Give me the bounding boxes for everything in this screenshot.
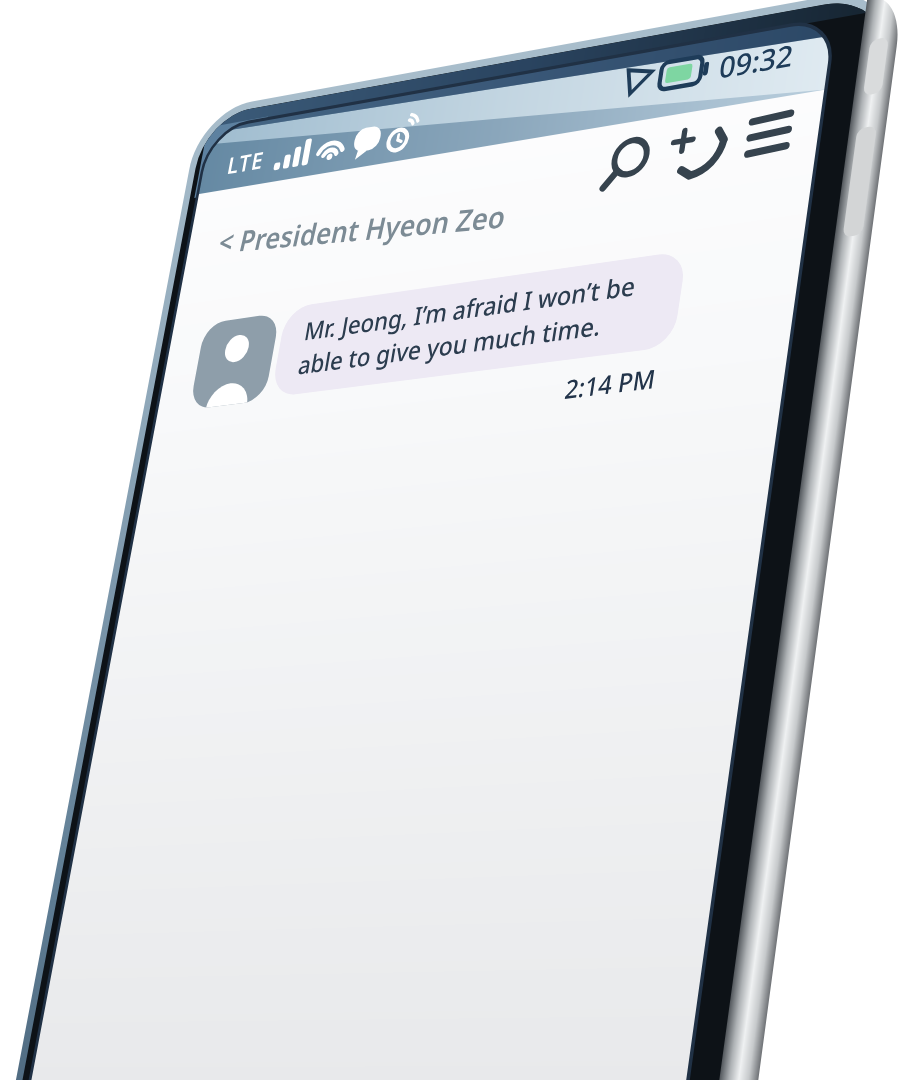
button[interactable] (212, 192, 502, 262)
button[interactable] (672, 118, 734, 178)
button[interactable] (600, 128, 660, 190)
button[interactable] (740, 100, 802, 162)
button[interactable] (280, 250, 680, 375)
